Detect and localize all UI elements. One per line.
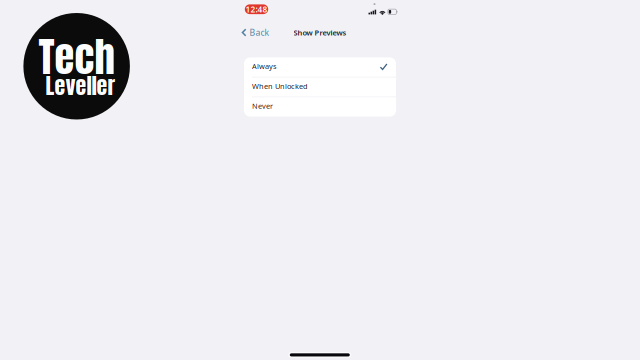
staticText: Leveller: [45, 69, 115, 102]
button[interactable]: When Unlocked: [244, 77, 396, 97]
staticText: Back: [249, 27, 269, 38]
staticText: Show Previews: [293, 27, 346, 38]
staticText: Never: [252, 101, 273, 111]
staticText: Always: [252, 61, 277, 71]
staticText: When Unlocked: [252, 81, 308, 91]
staticText: Tech: [38, 26, 114, 87]
button[interactable]: Never: [244, 97, 396, 117]
button[interactable]: Always: [244, 57, 396, 77]
staticText: 12:48: [245, 4, 267, 15]
button[interactable]: Back: [237, 26, 274, 39]
